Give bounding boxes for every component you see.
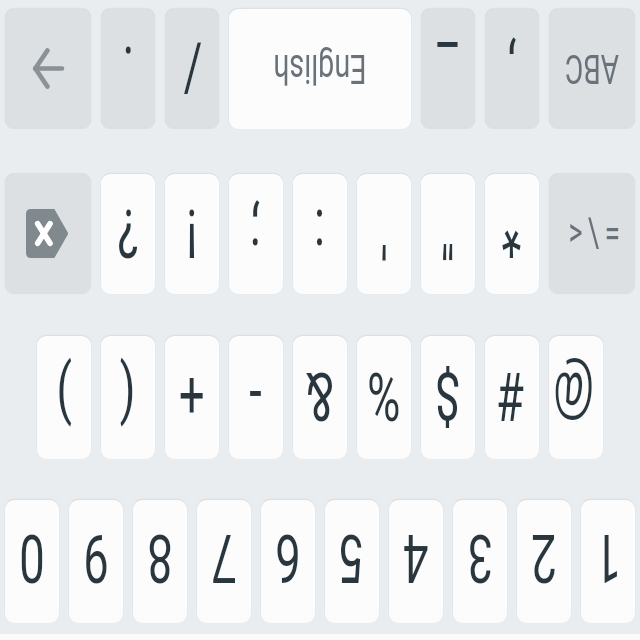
staticText: _ [437,30,458,109]
button[interactable]: , [485,9,539,129]
button[interactable]: _ [421,9,475,129]
staticText: 2 [531,518,557,597]
button[interactable]: % [357,336,411,459]
staticText: ? [117,193,139,272]
staticText: " [440,193,455,272]
staticText: ! [186,193,198,272]
button[interactable]: Backspace [5,174,91,294]
button[interactable]: @ [549,336,603,459]
staticText: , [507,30,517,109]
button[interactable]: =\< [549,174,635,294]
staticText: # [498,356,526,435]
button[interactable]: & [293,336,347,459]
staticText: : [314,193,325,272]
staticText: ( [120,356,135,435]
button[interactable]: 6 [261,500,315,623]
button[interactable]: : [293,174,347,294]
staticText: 7 [211,518,237,597]
staticText: % [367,356,401,435]
button[interactable]: ? [101,174,155,294]
staticText: 5 [339,518,365,597]
button[interactable]: - [229,336,283,459]
staticText: * [502,193,521,272]
staticText: 3 [467,518,493,597]
staticText: 8 [147,518,173,597]
button[interactable]: 1 [581,500,635,623]
button[interactable]: ; [229,174,283,294]
staticText: 6 [275,518,301,597]
button[interactable]: ABC [549,9,635,129]
staticText: / [182,29,201,108]
button[interactable]: 2 [517,500,571,623]
button[interactable]: ( [101,336,155,459]
button[interactable]: ) [37,336,91,459]
button[interactable]: # [485,336,539,459]
button[interactable]: 9 [69,500,123,623]
button[interactable]: English [229,9,411,129]
button[interactable]: $ [421,336,475,459]
staticText: ) [56,356,72,435]
staticText: English [273,45,367,92]
button[interactable]: " [421,174,475,294]
staticText: 1 [595,518,621,597]
staticText: 0 [19,518,45,597]
staticText: + [178,356,205,435]
button[interactable]: ! [165,174,219,294]
button[interactable]: . [101,9,155,129]
button[interactable]: + [165,336,219,459]
button[interactable]: 7 [197,500,251,623]
staticText: & [306,356,334,435]
staticText: ; [250,193,261,272]
staticText: 4 [403,518,429,597]
button[interactable]: Enter [5,9,91,129]
staticText: ABC [565,45,619,92]
button[interactable]: ' [357,174,411,294]
button[interactable]: * [485,174,539,294]
staticText: ' [380,193,388,272]
staticText: @ [558,356,594,435]
button[interactable]: 3 [453,500,507,623]
button[interactable]: 0 [5,500,59,623]
button[interactable]: / [165,9,219,129]
button[interactable]: 5 [325,500,379,623]
staticText: . [122,30,134,109]
staticText: $ [435,356,461,435]
staticText: =\< [562,210,621,257]
staticText: 9 [83,518,109,597]
button[interactable]: 8 [133,500,187,623]
button[interactable]: 4 [389,500,443,623]
staticText: - [249,356,262,435]
